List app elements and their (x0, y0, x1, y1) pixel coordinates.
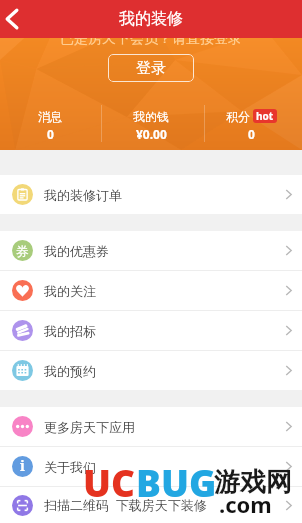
staticText: i (20, 456, 25, 475)
button[interactable]: 我的关注 (0, 271, 302, 310)
staticText: ¥0.00 (136, 126, 167, 142)
staticText: 我的关注 (44, 283, 96, 299)
staticText: 积分 (226, 109, 250, 124)
button[interactable]: 我的装修订单 (0, 175, 302, 214)
button[interactable]: 消息 (0, 109, 100, 142)
button[interactable]: 积分 (201, 109, 302, 142)
staticText: 游戏网 (214, 466, 292, 499)
staticText: BUG (136, 457, 217, 507)
staticText: 消息 (38, 109, 62, 124)
button[interactable]: Back (0, 4, 27, 34)
staticText: 我的预约 (44, 363, 96, 379)
staticText: 登录 (136, 59, 166, 78)
staticText: 我的装修 (119, 9, 183, 29)
staticText: 0 (47, 126, 54, 142)
staticText: 更多房天下应用 (44, 419, 135, 435)
button[interactable]: 我的钱 (100, 109, 201, 142)
staticText: 扫描二维码 下载房天下装修 (44, 496, 207, 514)
button[interactable]: 扫描二维码 下载房天下装修 (0, 487, 302, 523)
staticText: 关于我们 (44, 459, 96, 475)
button[interactable]: 我的招标 (0, 311, 302, 350)
staticText: .com (219, 489, 272, 519)
button[interactable]: 我的预约 (0, 351, 302, 390)
button[interactable]: i (0, 447, 302, 486)
staticText: 0 (248, 126, 255, 142)
staticText: 我的钱 (133, 109, 169, 124)
staticText: 券 (16, 243, 29, 259)
button[interactable]: 券 (0, 231, 302, 270)
staticText: 已是房天下会员？请直接登录 (60, 30, 242, 48)
staticText: UC (83, 457, 136, 507)
staticText: 我的招标 (44, 323, 96, 339)
staticText: 我的优惠券 (44, 243, 109, 259)
button[interactable]: 更多房天下应用 (0, 407, 302, 446)
staticText: hot (256, 109, 274, 123)
staticText: 我的装修订单 (44, 187, 122, 203)
button[interactable]: 登录 (108, 54, 194, 82)
